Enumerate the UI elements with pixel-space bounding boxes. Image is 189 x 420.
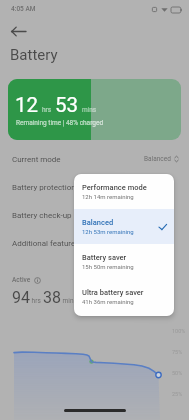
- button[interactable]: Balanced: [74, 209, 174, 244]
- button[interactable]: Battery protection: [0, 173, 189, 201]
- button[interactable]: Back: [9, 22, 28, 41]
- staticText: 41h 36m remaining: [82, 298, 134, 305]
- staticText: 75%: [172, 349, 183, 355]
- staticText: hrs: [30, 297, 43, 305]
- staticText: min: [61, 297, 74, 305]
- button[interactable]: Battery saver: [74, 244, 174, 279]
- staticText: mins: [82, 106, 97, 114]
- button[interactable]: Additional features: [0, 229, 189, 257]
- staticText: hrs: [42, 106, 52, 114]
- staticText: 50%: [172, 370, 183, 376]
- staticText: 38: [43, 288, 61, 307]
- staticText: Additional features: [12, 239, 80, 248]
- staticText: 12: [15, 93, 39, 117]
- staticText: 25%: [172, 391, 183, 397]
- staticText: Battery: [10, 46, 58, 64]
- staticText: 100%: [172, 328, 186, 334]
- staticText: Balanced: [144, 155, 171, 163]
- staticText: 12h 53m remaining: [82, 228, 134, 235]
- staticText: Current mode: [12, 155, 61, 164]
- staticText: 53: [55, 93, 79, 117]
- staticText: Remaining time | 48% charged: [16, 119, 104, 127]
- staticText: Balanced: [82, 218, 114, 227]
- button[interactable]: Performance mode: [74, 174, 174, 209]
- staticText: 94: [12, 288, 30, 307]
- staticText: 4:05 AM: [11, 5, 36, 13]
- staticText: 12h 14m remaining: [82, 193, 134, 200]
- button[interactable]: Current mode: [0, 148, 189, 170]
- staticText: Battery protection: [12, 183, 76, 192]
- staticText: Performance mode: [82, 183, 147, 192]
- staticText: Ultra battery saver: [82, 288, 144, 297]
- staticText: Battery saver: [82, 253, 127, 262]
- staticText: 15h 50m remaining: [82, 263, 134, 270]
- button[interactable]: Battery check-up: [0, 201, 189, 229]
- button[interactable]: Ultra battery saver: [74, 279, 174, 314]
- staticText: Active: [12, 276, 31, 284]
- button[interactable]: 12: [8, 79, 181, 140]
- staticText: Battery check-up: [12, 211, 72, 220]
